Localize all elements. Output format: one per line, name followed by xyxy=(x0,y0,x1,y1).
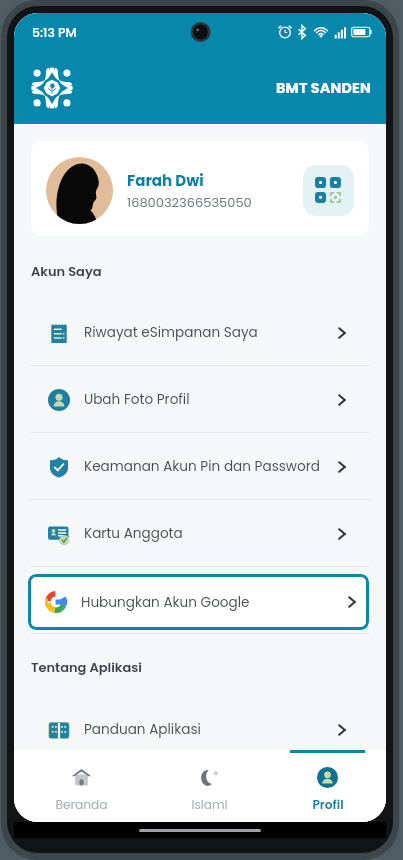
button[interactable]: Riwayat eSimpanan Saya xyxy=(14,299,386,366)
staticText: 1680032366535050 xyxy=(127,193,252,211)
staticText: Akun Saya xyxy=(31,262,102,280)
button[interactable]: Scan QR code xyxy=(303,165,354,216)
button[interactable]: Panduan Aplikasi xyxy=(14,696,386,763)
staticText: Riwayat eSimpanan Saya xyxy=(84,323,258,342)
staticText: Kartu Anggota xyxy=(84,524,183,543)
other: Open xyxy=(335,326,349,340)
staticText: 5:13 PM xyxy=(32,24,77,41)
button[interactable]: Beranda xyxy=(14,750,149,822)
other: Open xyxy=(345,595,359,609)
staticText: Keamanan Akun Pin dan Password xyxy=(84,457,320,476)
staticText: Islami xyxy=(191,796,228,813)
staticText: Hubungkan Akun Google xyxy=(81,593,250,612)
button[interactable]: Islami xyxy=(149,750,269,822)
button[interactable]: Hubungkan Akun Google xyxy=(28,574,369,630)
button[interactable]: Profil xyxy=(269,750,386,822)
other: Open xyxy=(335,723,349,737)
staticText: BMT SANDEN xyxy=(276,78,371,98)
staticText: Ubah Foto Profil xyxy=(84,390,190,409)
button[interactable]: Keamanan Akun Pin dan Password xyxy=(14,433,386,500)
staticText: Profil xyxy=(312,796,344,813)
staticText: Tentang Aplikasi xyxy=(31,658,142,676)
other: Open xyxy=(335,460,349,474)
button[interactable]: Farah Dwi xyxy=(31,141,369,236)
other: Open xyxy=(335,527,349,541)
staticText: Beranda xyxy=(55,796,108,813)
button[interactable]: Kartu Anggota xyxy=(14,500,386,567)
other: BMT Sanden logo xyxy=(31,67,73,109)
staticText: Panduan Aplikasi xyxy=(84,720,201,739)
button[interactable]: Ubah Foto Profil xyxy=(14,366,386,433)
other: Open xyxy=(335,393,349,407)
staticText: Farah Dwi xyxy=(127,170,204,191)
